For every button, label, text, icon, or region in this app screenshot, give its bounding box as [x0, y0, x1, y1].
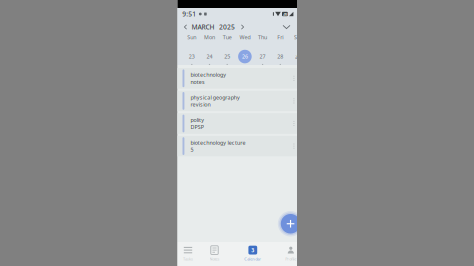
- button[interactable]: physical geography revision: [177, 91, 297, 111]
- button[interactable]: Expand calendar: [279, 21, 293, 33]
- button[interactable]: Sat: [289, 34, 307, 65]
- staticText: polity DPSP: [190, 116, 204, 131]
- staticText: physical geography revision: [190, 94, 240, 108]
- staticText: 24: [206, 53, 212, 60]
- staticText: 9:51: [182, 10, 196, 18]
- button[interactable]: Add event: [278, 211, 303, 236]
- staticText: 23: [189, 53, 195, 60]
- button[interactable]: Tue: [218, 34, 236, 65]
- button[interactable]: polity DPSP: [177, 113, 297, 134]
- staticText: Thu: [258, 34, 267, 41]
- button[interactable]: Thu: [254, 34, 271, 65]
- staticText: 2025: [219, 23, 235, 31]
- staticText: 26: [242, 53, 248, 60]
- button[interactable]: Sun: [183, 34, 201, 65]
- button[interactable]: Tasks: [177, 242, 198, 266]
- button[interactable]: biotechnology lecture 5: [177, 136, 297, 156]
- staticText: Tasks: [183, 256, 193, 261]
- staticText: Profile: [285, 256, 296, 261]
- staticText: Calendar: [244, 256, 261, 261]
- staticText: Sun: [187, 34, 196, 41]
- staticText: 3: [251, 247, 254, 254]
- staticText: biotechnology notes: [190, 71, 226, 85]
- staticText: 29: [295, 53, 301, 60]
- button[interactable]: Profile: [280, 242, 301, 266]
- staticText: Fri: [277, 34, 283, 41]
- staticText: biotechnology lecture 5: [190, 139, 245, 153]
- button[interactable]: Next month: [235, 21, 250, 33]
- button[interactable]: Wed: [236, 34, 254, 65]
- button[interactable]: biotechnology notes: [177, 68, 297, 89]
- button[interactable]: Previous month: [179, 21, 191, 33]
- staticText: 28: [277, 53, 283, 60]
- button[interactable]: Notes: [204, 242, 225, 266]
- staticText: 25: [224, 53, 230, 60]
- staticText: 27: [260, 53, 266, 60]
- staticText: Wed: [239, 34, 250, 41]
- staticText: 20: [283, 11, 287, 17]
- staticText: MARCH: [191, 23, 214, 31]
- staticText: Notes: [209, 256, 219, 261]
- button[interactable]: 3: [242, 242, 263, 266]
- button[interactable]: Mon: [201, 34, 218, 65]
- button[interactable]: Fri: [271, 34, 289, 65]
- staticText: Mon: [204, 34, 215, 41]
- staticText: Sat: [294, 34, 302, 41]
- staticText: Tue: [223, 34, 232, 41]
